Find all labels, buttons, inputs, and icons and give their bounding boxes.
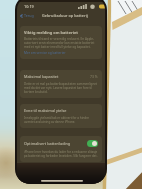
staticText: Mer om service og batterier [24, 51, 66, 55]
staticText: Viktig melding om batteriet [24, 30, 78, 35]
staticText: 10:19 [24, 4, 34, 9]
button[interactable]: Optimalisert batterilading [87, 140, 98, 147]
staticText: Optimalisert batterilading [24, 141, 71, 146]
staticText: 73 % [90, 74, 98, 79]
button[interactable]: Maksimal kapasitet [20, 70, 102, 98]
staticText: Dette er et mal pa batterikapasiteten sa… [24, 82, 98, 94]
button[interactable]: Optimalisert batterilading [20, 136, 102, 162]
button[interactable]: Terug [17, 13, 36, 18]
staticText: Innebygde ytelsestiltak er aktivert for … [24, 116, 98, 124]
staticText: Gebruiksduur op batterij [42, 13, 88, 18]
button[interactable]: Viktig melding om batteriet [20, 26, 102, 59]
staticText: Terug [24, 13, 34, 18]
button[interactable]: Evne til maksimal ytelse [20, 104, 102, 128]
staticText: Maksimal kapasitet [24, 74, 59, 79]
staticText: Batteriets tilstand er vesentlig reduser… [24, 37, 98, 49]
staticText: Evne til maksimal ytelse [24, 108, 67, 113]
staticText: iPhone lerer hvordan du lader for a redu… [24, 150, 98, 158]
